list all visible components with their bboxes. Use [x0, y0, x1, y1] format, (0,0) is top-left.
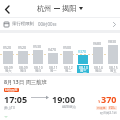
staticText: 杭州 — [37, 4, 52, 13]
staticText: 特价推荐 — [5, 88, 18, 92]
button[interactable]: Back — [0, 2, 14, 16]
staticText: 揭阳潮汕 — [62, 105, 76, 109]
button[interactable]: 杭州 — [37, 4, 83, 13]
button[interactable]: ¥370 — [75, 33, 90, 73]
staticText: ¥530 — [33, 44, 42, 49]
staticText: 周六 — [5, 69, 12, 73]
staticText: 周五 — [110, 69, 117, 73]
staticText: ¥520 — [3, 45, 12, 50]
staticText: 08-10 — [34, 65, 43, 69]
button[interactable]: ¥520 — [15, 33, 30, 73]
button[interactable]: ¥830 — [105, 33, 120, 73]
staticText: 萧山T3 — [4, 105, 15, 110]
button[interactable]: ¥470 — [45, 33, 60, 73]
button[interactable]: ¥680 — [90, 33, 105, 73]
staticText: ¥520 — [18, 45, 27, 50]
staticText: ¥370 — [78, 49, 87, 54]
button[interactable]: 筛行程限制 — [0, 18, 120, 30]
button[interactable]: 特价推荐 — [0, 87, 120, 120]
staticText: 8月13日 周三航班 — [4, 78, 47, 85]
staticText: 筛行程限制 — [12, 21, 34, 27]
button[interactable]: ¥530 — [30, 33, 45, 73]
staticText: 00时00日 — [38, 21, 57, 27]
staticText: 周三 — [80, 69, 87, 73]
staticText: 08-13 — [79, 65, 88, 69]
button[interactable]: ¥520 — [0, 33, 15, 73]
staticText: 周四 — [95, 69, 102, 73]
staticText: 经济舱3.1折 — [100, 111, 117, 115]
staticText: 周日 — [35, 69, 42, 73]
button[interactable]: ¥500 — [60, 33, 75, 73]
staticText: ¥830 — [108, 39, 117, 44]
staticText: 08-12 — [64, 65, 73, 69]
staticText: ¥680 — [93, 41, 102, 46]
staticText: 08-09 — [4, 65, 13, 69]
staticText: 周二 — [65, 69, 72, 73]
staticText: 19:00 — [52, 93, 76, 105]
staticText: ¥20+ — [109, 106, 116, 110]
staticText: 揭阳 — [62, 4, 77, 13]
staticText: ¥500 — [63, 45, 72, 50]
staticText: 周一 — [50, 69, 57, 73]
staticText: 周日 — [20, 69, 27, 73]
staticText: 已改签 — [97, 106, 106, 110]
staticText: 17:05 — [4, 93, 28, 105]
staticText: 08-14 — [94, 65, 103, 69]
staticText: ¥ — [98, 99, 101, 105]
staticText: 08-15 — [109, 65, 118, 69]
staticText: ¥470 — [48, 47, 57, 52]
staticText: 370 — [101, 93, 117, 105]
staticText: 08-09 — [19, 65, 28, 69]
staticText: 08-11 — [49, 65, 58, 69]
